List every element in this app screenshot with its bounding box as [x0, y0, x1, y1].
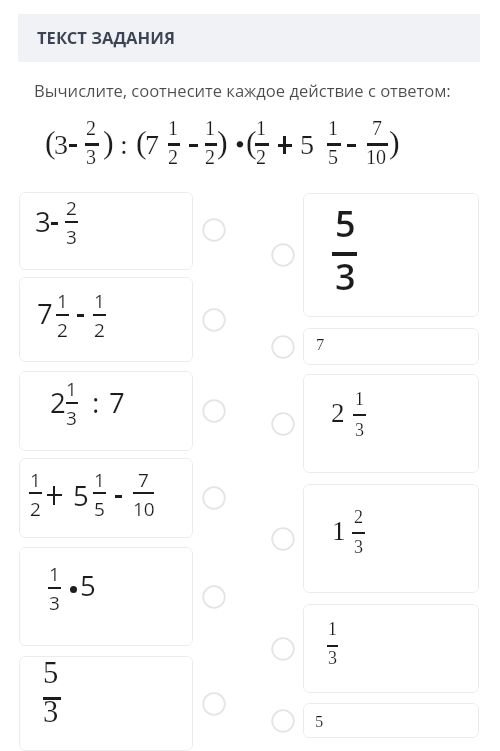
- staticText: 7: [109, 384, 125, 421]
- staticText: 3: [86, 146, 96, 168]
- staticText: 3: [335, 252, 356, 301]
- staticText: 10: [133, 496, 155, 522]
- staticText: 5: [315, 712, 324, 730]
- staticText: (: [45, 124, 56, 159]
- button[interactable]: ТЕКСТ ЗАДАНИЯ: [18, 14, 480, 62]
- button[interactable]: Select option: [202, 692, 226, 716]
- staticText: 2: [57, 317, 68, 343]
- staticText: 1: [328, 117, 338, 139]
- staticText: 1: [332, 516, 346, 546]
- staticText: 3: [43, 695, 59, 729]
- staticText: 1: [57, 288, 68, 314]
- staticText: 7: [316, 335, 325, 353]
- button[interactable]: [19, 547, 193, 646]
- button[interactable]: [303, 703, 479, 738]
- staticText: Вычислите, соотнесите каждое действие с …: [34, 79, 451, 102]
- staticText: (: [246, 124, 257, 159]
- staticText: ): [103, 124, 114, 159]
- staticText: 2: [66, 195, 77, 221]
- staticText: 1: [328, 619, 337, 639]
- staticText: 7: [37, 295, 53, 332]
- staticText: 3: [35, 203, 51, 240]
- staticText: 5: [43, 656, 59, 690]
- button[interactable]: Select option: [202, 585, 226, 609]
- button[interactable]: [19, 277, 193, 362]
- staticText: 1: [355, 389, 364, 409]
- staticText: 2: [205, 146, 215, 168]
- button[interactable]: Select option: [202, 308, 226, 332]
- button[interactable]: [19, 458, 193, 538]
- staticText: 1: [94, 288, 105, 314]
- staticText: 2: [168, 146, 178, 168]
- button[interactable]: [303, 193, 479, 317]
- button[interactable]: [303, 604, 479, 693]
- staticText: 5: [94, 496, 105, 522]
- staticText: 2: [354, 507, 363, 527]
- button[interactable]: Select option: [202, 399, 226, 423]
- staticText: ): [389, 124, 400, 159]
- button[interactable]: Select option: [271, 335, 295, 359]
- staticText: 5: [73, 477, 89, 514]
- staticText: 5: [335, 199, 356, 248]
- button[interactable]: [303, 328, 479, 365]
- staticText: 1: [94, 467, 105, 493]
- staticText: 10: [366, 146, 386, 168]
- button[interactable]: Select option: [271, 709, 295, 733]
- staticText: :: [120, 129, 128, 160]
- staticText: 3: [328, 648, 337, 668]
- staticText: 2: [331, 398, 345, 428]
- staticText: 2: [94, 317, 105, 343]
- staticText: :: [92, 384, 100, 421]
- staticText: 1: [30, 467, 41, 493]
- staticText: 5: [300, 129, 314, 160]
- staticText: 3: [49, 590, 60, 616]
- staticText: 1: [66, 376, 77, 402]
- staticText: 1: [168, 117, 178, 139]
- button[interactable]: Select option: [202, 486, 226, 510]
- staticText: 1: [49, 561, 60, 587]
- staticText: ): [217, 124, 228, 159]
- staticText: 2: [86, 117, 96, 139]
- staticText: 5: [328, 146, 338, 168]
- button[interactable]: Select option: [271, 637, 295, 661]
- staticText: ТЕКСТ ЗАДАНИЯ: [37, 26, 175, 49]
- staticText: 1: [205, 117, 215, 139]
- button[interactable]: [303, 484, 479, 593]
- staticText: 5: [80, 567, 96, 604]
- staticText: 1: [256, 117, 266, 139]
- button[interactable]: Select option: [271, 527, 295, 551]
- staticText: 7: [138, 467, 149, 493]
- staticText: •: [235, 129, 245, 160]
- button[interactable]: [303, 374, 479, 473]
- button[interactable]: Select option: [202, 218, 226, 242]
- button[interactable]: [19, 656, 193, 751]
- staticText: 3: [54, 129, 68, 160]
- staticText: 2: [30, 496, 41, 522]
- staticText: 7: [372, 117, 382, 139]
- staticText: 7: [145, 129, 159, 160]
- button[interactable]: Select option: [271, 412, 295, 436]
- staticText: 3: [66, 405, 77, 431]
- staticText: 3: [355, 420, 364, 440]
- button[interactable]: [19, 371, 193, 451]
- staticText: 3: [66, 224, 77, 250]
- button[interactable]: Select option: [271, 243, 295, 267]
- staticText: 3: [354, 537, 363, 557]
- staticText: 2: [256, 146, 266, 168]
- staticText: (: [136, 124, 147, 159]
- button[interactable]: [19, 192, 193, 270]
- staticText: 2: [50, 384, 66, 421]
